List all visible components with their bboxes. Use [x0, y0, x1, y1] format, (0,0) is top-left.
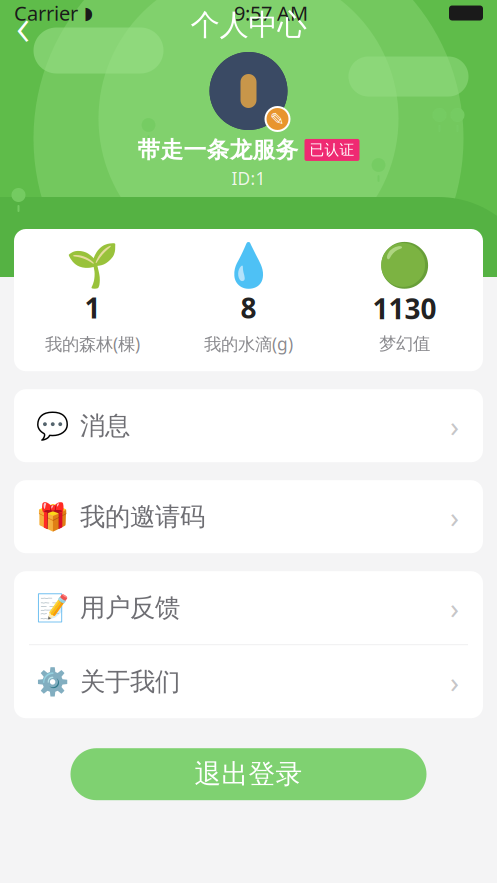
- button[interactable]: 🎁: [14, 480, 483, 553]
- staticText: 消息: [80, 410, 130, 441]
- staticText: 💧: [222, 241, 275, 289]
- button[interactable]: Edit avatar: [264, 106, 290, 132]
- staticText: 🟢: [378, 241, 431, 290]
- staticText: 关于我们: [80, 666, 180, 697]
- staticText: ✎: [270, 109, 285, 129]
- button[interactable]: 📝: [14, 571, 483, 644]
- staticText: 🌱: [66, 241, 119, 289]
- staticText: 个人中心: [190, 7, 306, 43]
- staticText: ◗: [78, 3, 93, 23]
- staticText: 1130: [372, 290, 436, 327]
- staticText: 📝: [35, 592, 68, 623]
- staticText: 用户反馈: [80, 592, 180, 623]
- staticText: 梦幻值: [379, 333, 430, 354]
- button[interactable]: 💬: [14, 389, 483, 462]
- staticText: ›: [450, 406, 459, 445]
- staticText: ›: [450, 588, 459, 627]
- staticText: 8: [240, 289, 256, 326]
- button[interactable]: ⚙️: [14, 645, 483, 718]
- staticText: 💬: [35, 410, 68, 441]
- staticText: 我的森林(棵): [45, 332, 140, 355]
- staticText: ›: [450, 662, 459, 701]
- staticText: ›: [450, 497, 459, 536]
- staticText: 我的水滴(g): [204, 332, 293, 355]
- staticText: ID:1: [231, 167, 265, 190]
- staticText: 1: [84, 289, 100, 326]
- staticText: 🎁: [35, 501, 68, 532]
- staticText: 已认证: [309, 141, 354, 159]
- button[interactable]: 退出登录: [70, 748, 426, 800]
- staticText: 9:57 AM: [234, 0, 308, 26]
- staticText: ⚙️: [35, 666, 68, 697]
- staticText: 我的邀请码: [80, 501, 205, 532]
- staticText: 带走一条龙服务: [137, 136, 298, 164]
- staticText: Carrier: [14, 0, 78, 26]
- staticText: 退出登录: [194, 758, 302, 791]
- button[interactable]: Back: [0, 3, 46, 47]
- staticText: ‹: [16, 0, 30, 60]
